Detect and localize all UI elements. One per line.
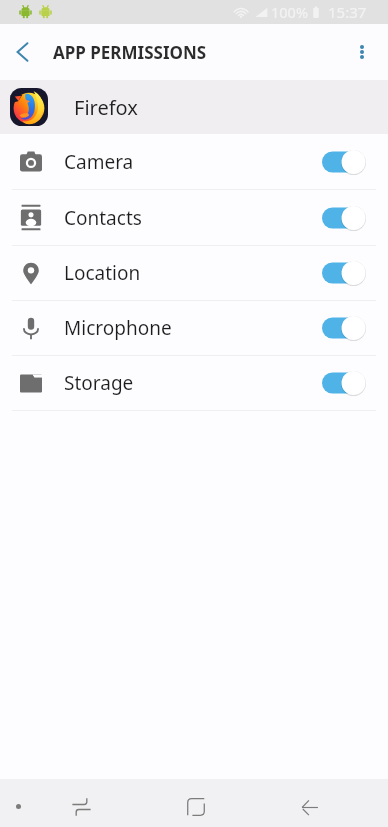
staticText: APP PERMISSIONS <box>53 41 207 64</box>
staticText: Camera <box>64 149 134 175</box>
button[interactable]: Recent apps <box>57 783 105 827</box>
button[interactable]: Storage <box>0 356 388 410</box>
button[interactable]: Firefox <box>0 80 388 134</box>
button[interactable]: Toggle permission <box>322 149 366 175</box>
button[interactable]: Toggle permission <box>322 260 366 286</box>
staticText: Microphone <box>64 315 172 341</box>
button[interactable]: Toggle permission <box>322 370 366 396</box>
button[interactable]: Toggle permission <box>322 315 366 341</box>
button[interactable]: Home <box>172 783 220 827</box>
button[interactable]: Location <box>0 246 388 300</box>
staticText: Location <box>64 260 141 286</box>
staticText: Firefox <box>74 94 138 121</box>
button[interactable]: Microphone <box>0 301 388 355</box>
staticText: 15:37 <box>328 2 367 22</box>
button[interactable]: Camera <box>0 134 388 189</box>
button[interactable]: Navigate up <box>0 30 44 74</box>
button[interactable]: Back <box>286 783 334 827</box>
staticText: 100% <box>271 2 308 22</box>
staticText: Contacts <box>64 205 142 231</box>
button[interactable]: Toggle permission <box>322 205 366 231</box>
button[interactable]: Contacts <box>0 190 388 245</box>
button[interactable]: More options <box>344 30 380 74</box>
staticText: Storage <box>64 370 134 396</box>
